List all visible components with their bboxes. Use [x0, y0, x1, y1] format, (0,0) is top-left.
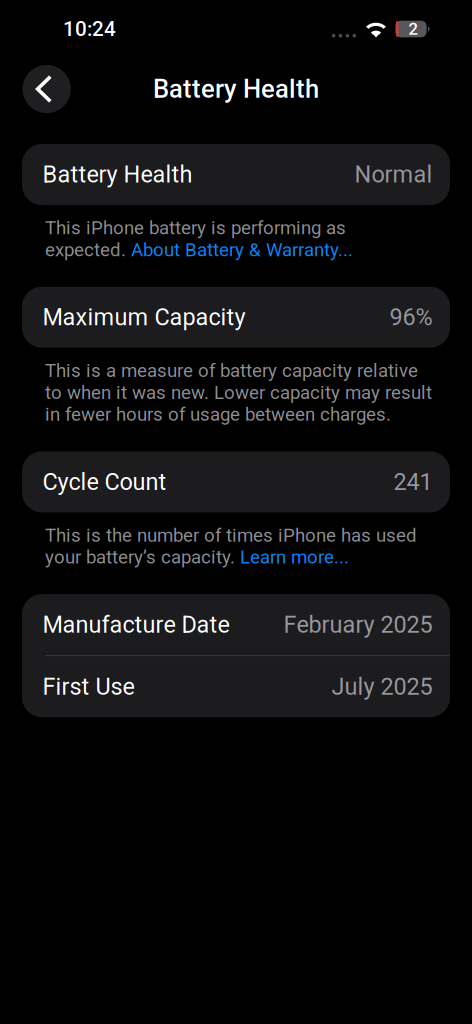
button[interactable]: Back	[23, 65, 71, 113]
button[interactable]: First Use	[22, 656, 450, 717]
staticText: 96%	[389, 303, 432, 331]
staticText: Normal	[354, 161, 432, 188]
staticText: First Use	[42, 673, 134, 700]
staticText: This iPhone battery is performing as exp…	[45, 217, 353, 261]
button[interactable]: Cycle Count	[22, 451, 450, 512]
staticText: This is the number of times iPhone has u…	[45, 524, 417, 568]
staticText: Cycle Count	[42, 468, 166, 496]
staticText: 10:24	[63, 17, 116, 41]
staticText: 2	[408, 19, 417, 39]
button[interactable]: Maximum Capacity	[22, 287, 450, 348]
staticText: July 2025	[331, 673, 432, 700]
staticText: This is a measure of battery capacity re…	[45, 360, 432, 425]
staticText: Battery Health	[153, 74, 319, 104]
button[interactable]: Manufacture Date	[22, 594, 450, 655]
staticText: 241	[393, 468, 432, 496]
staticText: Manufacture Date	[42, 611, 229, 638]
staticText: Battery Health	[42, 161, 192, 188]
staticText: Maximum Capacity	[42, 303, 245, 331]
staticText: February 2025	[283, 611, 432, 638]
button[interactable]: Battery Health	[22, 144, 450, 205]
